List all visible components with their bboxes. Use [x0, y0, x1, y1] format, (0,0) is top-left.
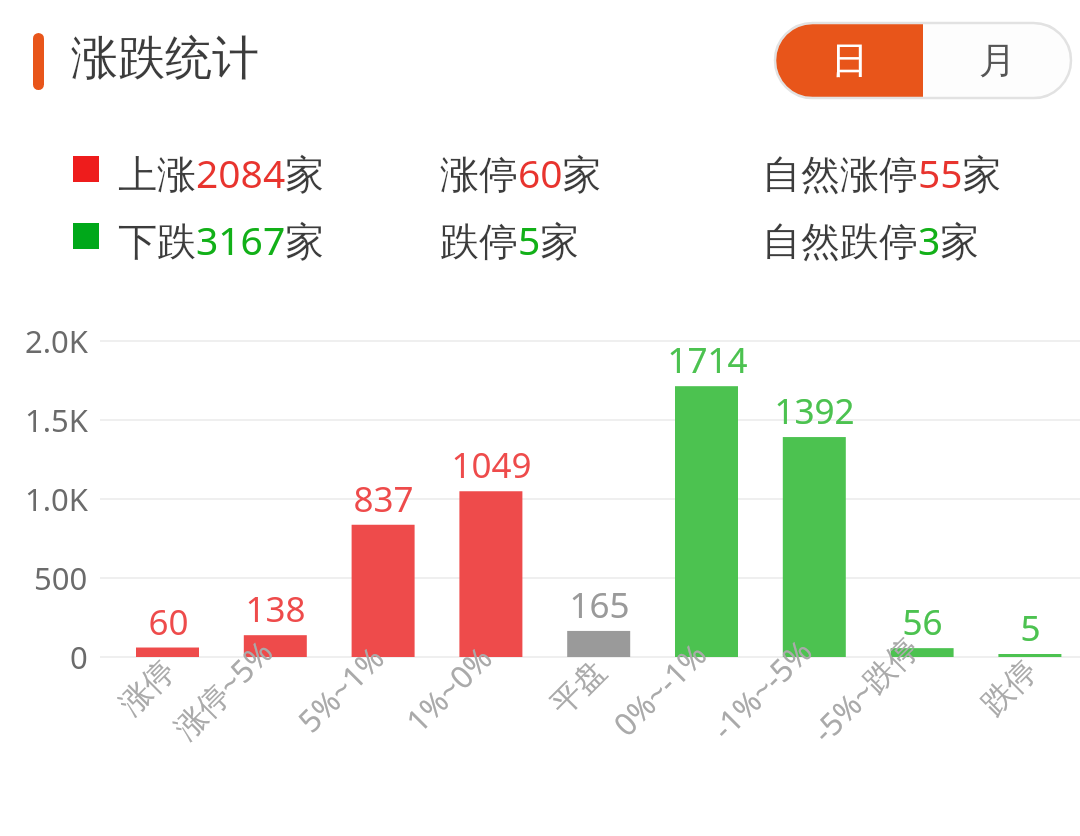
button[interactable]: 日 — [775, 23, 923, 98]
staticText: 1%~0% — [396, 637, 500, 741]
staticText: 平盘 — [542, 652, 614, 723]
button[interactable]: 自然涨停55家 — [762, 146, 1002, 199]
staticText: 涨停 — [111, 652, 183, 723]
staticText: -1%~-5% — [702, 630, 821, 748]
button[interactable]: 上涨2084家 — [118, 146, 325, 199]
button[interactable]: 自然跌停3家 — [762, 213, 980, 266]
staticText: 5 — [1020, 604, 1041, 652]
staticText: 跌停 — [973, 652, 1045, 723]
staticText: 1714 — [667, 336, 748, 384]
staticText: 5%~1% — [288, 637, 392, 741]
button[interactable]: 月 — [923, 23, 1071, 98]
staticText: 56 — [902, 598, 943, 646]
staticText: 837 — [353, 475, 414, 523]
staticText: -5%~跌停 — [803, 627, 927, 751]
button[interactable]: 跌停5家 — [440, 213, 580, 266]
staticText: 500 — [34, 557, 88, 599]
staticText: 1.0K — [25, 478, 88, 520]
staticText: 0%~-1% — [604, 633, 715, 744]
button[interactable]: 下跌3167家 — [118, 213, 325, 266]
button[interactable]: 涨停60家 — [440, 146, 602, 199]
staticText: 1.5K — [25, 399, 88, 441]
staticText: 1392 — [774, 387, 855, 435]
staticText: 涨跌统计 — [71, 29, 259, 88]
staticText: 1049 — [451, 441, 532, 489]
staticText: 60 — [148, 598, 189, 646]
staticText: 月 — [979, 37, 1016, 84]
staticText: 涨停~5% — [164, 630, 282, 748]
staticText: 2.0K — [25, 320, 88, 362]
staticText: 日 — [831, 37, 868, 84]
staticText: 138 — [245, 585, 306, 633]
staticText: 0 — [70, 636, 88, 678]
staticText: 165 — [569, 581, 630, 629]
